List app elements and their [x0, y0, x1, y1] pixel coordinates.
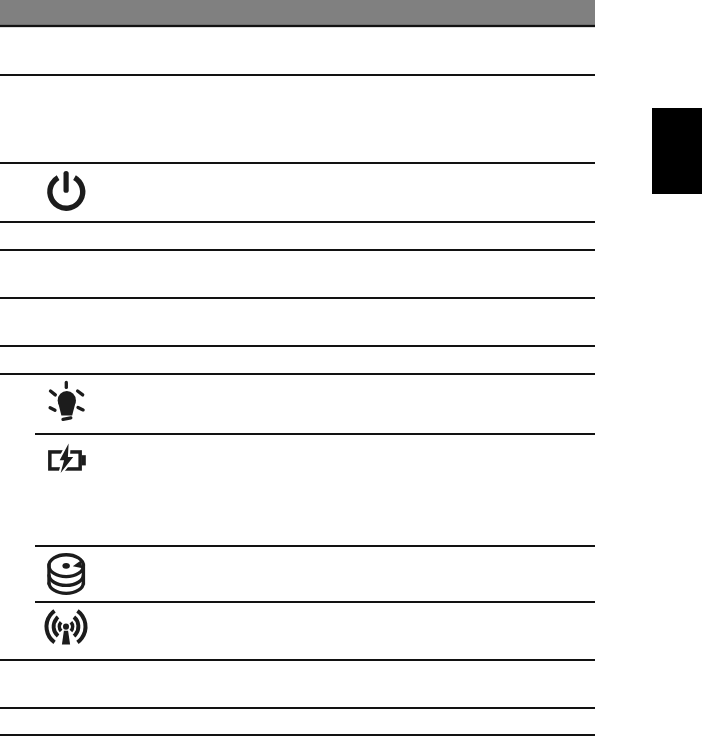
button[interactable]: Battery charging indicator — [0, 434, 595, 546]
button[interactable]: Card reader activity — [0, 709, 595, 736]
button[interactable]: Function column header — [0, 75, 595, 163]
button[interactable]: Bluetooth communication — [0, 223, 595, 251]
button[interactable]: Icon column header — [0, 26, 595, 75]
button[interactable]: Wireless LAN communication — [0, 250, 595, 298]
button[interactable]: Wireless communication indicator — [0, 602, 595, 660]
button[interactable]: Caps lock — [0, 346, 595, 374]
button[interactable]: Power button — [0, 163, 595, 223]
button[interactable]: Power indicator light — [0, 375, 595, 435]
button[interactable]: Hard disk activity — [0, 546, 595, 602]
button[interactable]: Num lock — [0, 298, 595, 346]
button[interactable]: Media activity — [0, 661, 595, 709]
